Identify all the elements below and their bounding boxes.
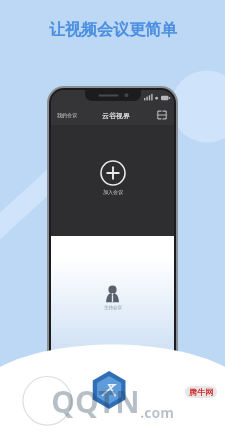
button[interactable]: 扫一扫	[155, 108, 169, 122]
staticText: 让视频会议更简单	[49, 20, 177, 40]
staticText: .com	[140, 403, 174, 422]
button[interactable]: 加入会议	[100, 160, 126, 186]
staticText: 我的会议	[57, 112, 77, 118]
button[interactable]: 我的会议	[56, 110, 78, 120]
staticText: 腾牛网	[189, 387, 213, 397]
button[interactable]: 主持会议	[103, 284, 122, 303]
staticText: 主持会议	[104, 305, 122, 311]
staticText: QQTN	[51, 381, 140, 422]
staticText: 加入会议	[103, 189, 123, 195]
staticText: 云谷视界	[102, 111, 130, 120]
